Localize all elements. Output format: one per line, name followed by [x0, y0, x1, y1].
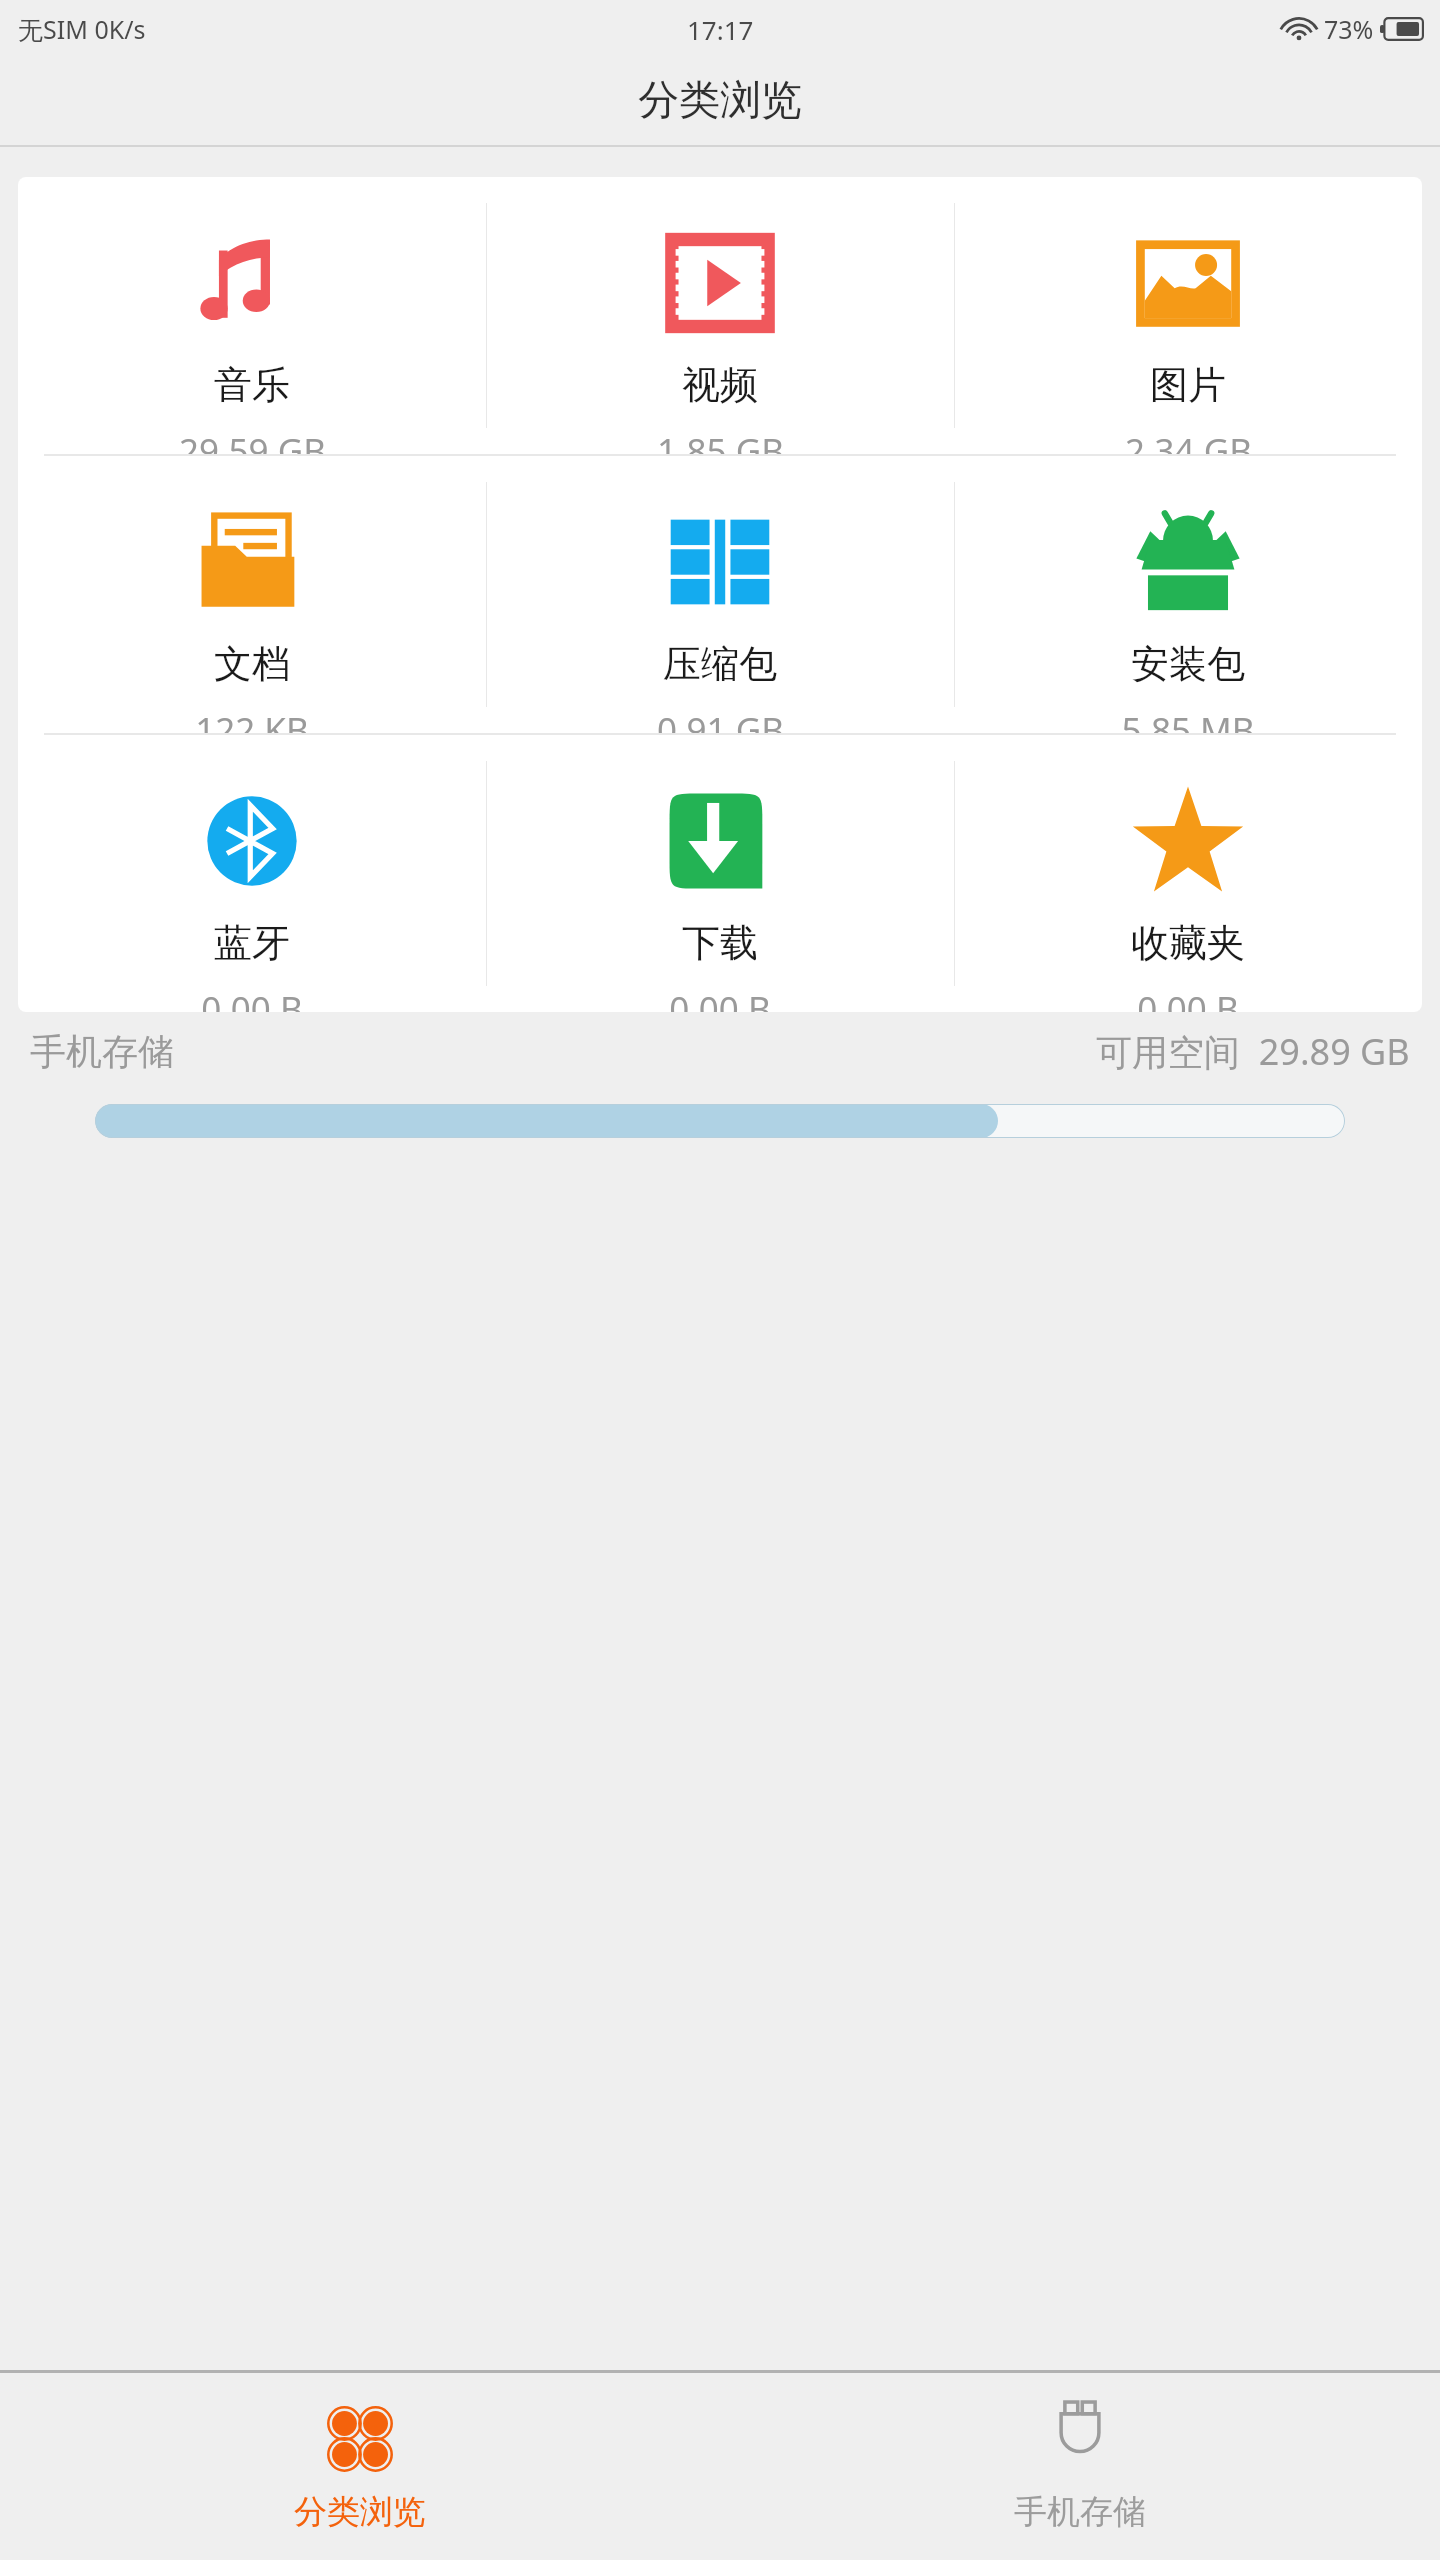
- staticText: 音乐: [214, 361, 290, 409]
- staticText: 压缩包: [663, 640, 777, 688]
- staticText: 29.59 GB: [179, 427, 326, 454]
- button[interactable]: 蓝牙: [18, 735, 486, 1012]
- button[interactable]: 下载: [486, 735, 954, 1012]
- staticText: 5.85 MB: [1121, 706, 1255, 733]
- staticText: 2.34 GB: [1125, 427, 1252, 454]
- staticText: 122 KB: [195, 706, 309, 733]
- staticText: 分类浏览: [638, 75, 802, 127]
- button[interactable]: 安装包: [954, 456, 1422, 733]
- button[interactable]: 视频: [486, 177, 954, 454]
- staticText: 无SIM 0K/s: [18, 12, 146, 46]
- staticText: 0.91 GB: [657, 706, 784, 733]
- staticText: 手机存储: [30, 1029, 174, 1074]
- button[interactable]: 压缩包: [486, 456, 954, 733]
- staticText: 17:17: [687, 12, 754, 47]
- staticText: 收藏夹: [1131, 919, 1245, 967]
- button[interactable]: 文档: [18, 456, 486, 733]
- button[interactable]: 手机存储: [720, 2373, 1440, 2560]
- staticText: 分类浏览: [294, 2491, 426, 2533]
- staticText: 下载: [682, 919, 758, 967]
- staticText: 安装包: [1131, 640, 1245, 688]
- button[interactable]: 音乐: [18, 177, 486, 454]
- staticText: 图片: [1150, 361, 1226, 409]
- staticText: 1.85 GB: [657, 427, 784, 454]
- staticText: 0.00 B: [1137, 985, 1239, 1012]
- staticText: 手机存储: [1014, 2491, 1146, 2533]
- staticText: 可用空间 29.89 GB: [1096, 1027, 1410, 1076]
- staticText: 蓝牙: [214, 919, 290, 967]
- button[interactable]: 分类浏览: [0, 2373, 720, 2560]
- staticText: 文档: [214, 640, 290, 688]
- staticText: 73%: [1324, 12, 1374, 46]
- button[interactable]: 收藏夹: [954, 735, 1422, 1012]
- staticText: 视频: [682, 361, 758, 409]
- staticText: 0.00 B: [201, 985, 303, 1012]
- button[interactable]: 图片: [954, 177, 1422, 454]
- staticText: 0.00 B: [669, 985, 771, 1012]
